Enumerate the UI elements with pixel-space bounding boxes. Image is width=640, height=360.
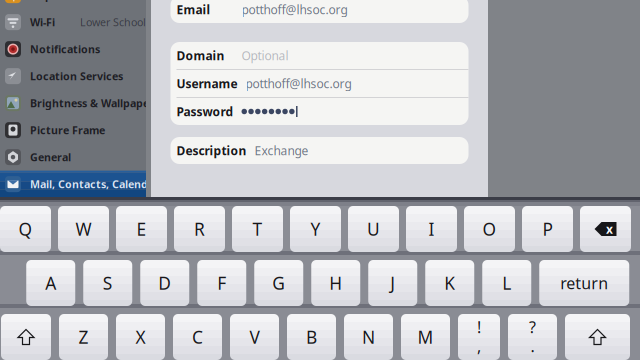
staticText: N bbox=[362, 325, 375, 348]
staticText: General bbox=[30, 150, 71, 164]
button[interactable]: T bbox=[232, 206, 283, 252]
button[interactable]: Z bbox=[59, 314, 108, 360]
button[interactable]: Brightness & Wallpaper bbox=[0, 90, 146, 117]
staticText: Location Services bbox=[30, 69, 123, 83]
button[interactable]: B bbox=[287, 314, 336, 360]
button[interactable]: V bbox=[230, 314, 279, 360]
staticText: P bbox=[542, 217, 552, 240]
staticText: Description bbox=[176, 142, 246, 159]
button[interactable]: Q bbox=[0, 206, 51, 252]
button[interactable]: U bbox=[348, 206, 399, 252]
staticText: A bbox=[45, 271, 56, 294]
staticText: O bbox=[482, 217, 496, 240]
staticText: T bbox=[252, 217, 262, 240]
staticText: potthoff@lhsoc.org bbox=[241, 1, 347, 17]
button[interactable]: Shift bbox=[565, 314, 630, 360]
staticText: D bbox=[158, 271, 171, 294]
button[interactable]: Wi-Fi bbox=[0, 9, 146, 36]
staticText: J bbox=[390, 271, 395, 294]
button[interactable]: R bbox=[174, 206, 225, 252]
button[interactable]: D bbox=[140, 260, 189, 306]
staticText: , bbox=[477, 335, 481, 357]
button[interactable]: ? bbox=[508, 314, 557, 360]
button[interactable]: Location Services bbox=[0, 63, 146, 90]
staticText: Domain bbox=[176, 47, 224, 64]
staticText: ? bbox=[529, 316, 536, 338]
staticText: X bbox=[135, 325, 145, 348]
staticText: Optional bbox=[241, 47, 288, 63]
staticText: W bbox=[75, 217, 91, 240]
button[interactable]: ! bbox=[458, 314, 500, 360]
staticText: B bbox=[306, 325, 317, 348]
button[interactable]: W bbox=[58, 206, 109, 252]
staticText: Notifications bbox=[30, 42, 100, 56]
staticText: S bbox=[103, 271, 113, 294]
button[interactable]: E bbox=[116, 206, 167, 252]
button[interactable]: L bbox=[482, 260, 531, 306]
button[interactable]: Mail, Contacts, Calendars bbox=[0, 171, 146, 198]
staticText: Exchange bbox=[254, 142, 308, 158]
staticText: Z bbox=[78, 325, 88, 348]
staticText: U bbox=[367, 217, 380, 240]
staticText: Username bbox=[176, 75, 237, 92]
staticText: Lower School bbox=[80, 15, 146, 29]
button[interactable]: P bbox=[522, 206, 573, 252]
button[interactable]: Delete bbox=[580, 206, 631, 252]
staticText: Mail, Contacts, Calendars bbox=[30, 177, 164, 191]
button[interactable]: K bbox=[425, 260, 474, 306]
staticText: potthoff@lhsoc.org bbox=[245, 75, 351, 91]
staticText: return bbox=[560, 272, 608, 294]
staticText: Wi-Fi bbox=[30, 15, 55, 29]
button[interactable]: O bbox=[464, 206, 515, 252]
staticText: . bbox=[530, 335, 534, 357]
staticText: G bbox=[272, 271, 285, 294]
staticText: E bbox=[136, 217, 146, 240]
staticText: x bbox=[606, 221, 613, 237]
staticText: Y bbox=[310, 217, 320, 240]
button[interactable]: General bbox=[0, 144, 146, 171]
button[interactable]: Shift bbox=[1, 314, 51, 360]
staticText: Password bbox=[176, 103, 233, 120]
button[interactable]: G bbox=[254, 260, 303, 306]
button[interactable]: N bbox=[344, 314, 393, 360]
button[interactable]: C bbox=[173, 314, 222, 360]
button[interactable]: X bbox=[116, 314, 165, 360]
staticText: F bbox=[217, 271, 226, 294]
staticText: ! bbox=[477, 316, 481, 338]
button[interactable]: H bbox=[311, 260, 360, 306]
button[interactable]: S bbox=[83, 260, 132, 306]
staticText: K bbox=[444, 271, 455, 294]
staticText: Picture Frame bbox=[30, 123, 105, 137]
button[interactable]: M bbox=[401, 314, 450, 360]
staticText: R bbox=[194, 217, 205, 240]
staticText: Brightness & Wallpaper bbox=[30, 96, 154, 110]
staticText: V bbox=[249, 325, 259, 348]
button[interactable]: A bbox=[26, 260, 75, 306]
button[interactable]: Y bbox=[290, 206, 341, 252]
button[interactable]: F bbox=[197, 260, 246, 306]
staticText: C bbox=[192, 325, 203, 348]
button[interactable]: return bbox=[539, 260, 629, 306]
staticText: I bbox=[428, 217, 434, 240]
button[interactable]: I bbox=[406, 206, 457, 252]
staticText: Airplane Mode bbox=[30, 0, 107, 2]
staticText: Q bbox=[18, 217, 32, 240]
button[interactable]: Picture Frame bbox=[0, 117, 146, 144]
button[interactable]: Notifications bbox=[0, 36, 146, 63]
button[interactable]: Airplane Mode bbox=[0, 0, 146, 9]
staticText: Email bbox=[176, 1, 210, 18]
button[interactable]: J bbox=[368, 260, 417, 306]
staticText: H bbox=[329, 271, 342, 294]
staticText: L bbox=[502, 271, 511, 294]
staticText: M bbox=[417, 325, 433, 348]
